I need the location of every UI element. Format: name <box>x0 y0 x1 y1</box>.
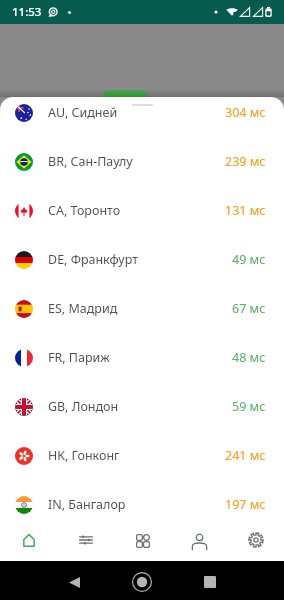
staticText: 11:53 <box>12 4 42 20</box>
button[interactable]: FR, Париж <box>0 333 284 382</box>
button[interactable]: HK, Гонконг <box>0 431 284 480</box>
button[interactable]: CA, Торонто <box>0 186 284 235</box>
staticText: 239 мс <box>225 153 266 170</box>
staticText: 197 мс <box>225 496 266 513</box>
button[interactable]: ES, Мадрид <box>0 284 284 333</box>
staticText: FR, Париж <box>48 349 232 366</box>
button[interactable]: Profile <box>170 518 227 561</box>
staticText: 48 мс <box>232 349 266 366</box>
button[interactable]: BR, Сан-Паулу <box>0 137 284 186</box>
staticText: 304 мс <box>225 104 266 121</box>
staticText: GB, Лондон <box>48 398 232 415</box>
button[interactable]: Recents <box>193 565 227 599</box>
button[interactable]: AU, Сидней <box>0 97 284 137</box>
button[interactable]: Home <box>0 518 56 561</box>
button[interactable]: IN, Бангалор <box>0 480 284 518</box>
staticText: 241 мс <box>225 447 266 464</box>
staticText: AU, Сидней <box>48 104 225 121</box>
staticText: IN, Бангалор <box>48 496 225 513</box>
staticText: 131 мс <box>225 202 266 219</box>
button[interactable]: Filters <box>56 518 113 561</box>
staticText: BR, Сан-Паулу <box>48 153 225 170</box>
staticText: HK, Гонконг <box>48 447 225 464</box>
button[interactable]: Home <box>125 565 159 599</box>
staticText: CA, Торонто <box>48 202 225 219</box>
staticText: ES, Мадрид <box>48 300 232 317</box>
staticText: 67 мс <box>232 300 266 317</box>
staticText: 59 мс <box>232 398 266 415</box>
button[interactable]: Apps <box>113 518 170 561</box>
button[interactable]: DE, Франкфурт <box>0 235 284 284</box>
staticText: 49 мс <box>232 251 266 268</box>
button[interactable]: Settings <box>227 518 284 561</box>
button[interactable]: Back <box>57 565 91 599</box>
staticText: DE, Франкфурт <box>48 251 232 268</box>
button[interactable]: GB, Лондон <box>0 382 284 431</box>
